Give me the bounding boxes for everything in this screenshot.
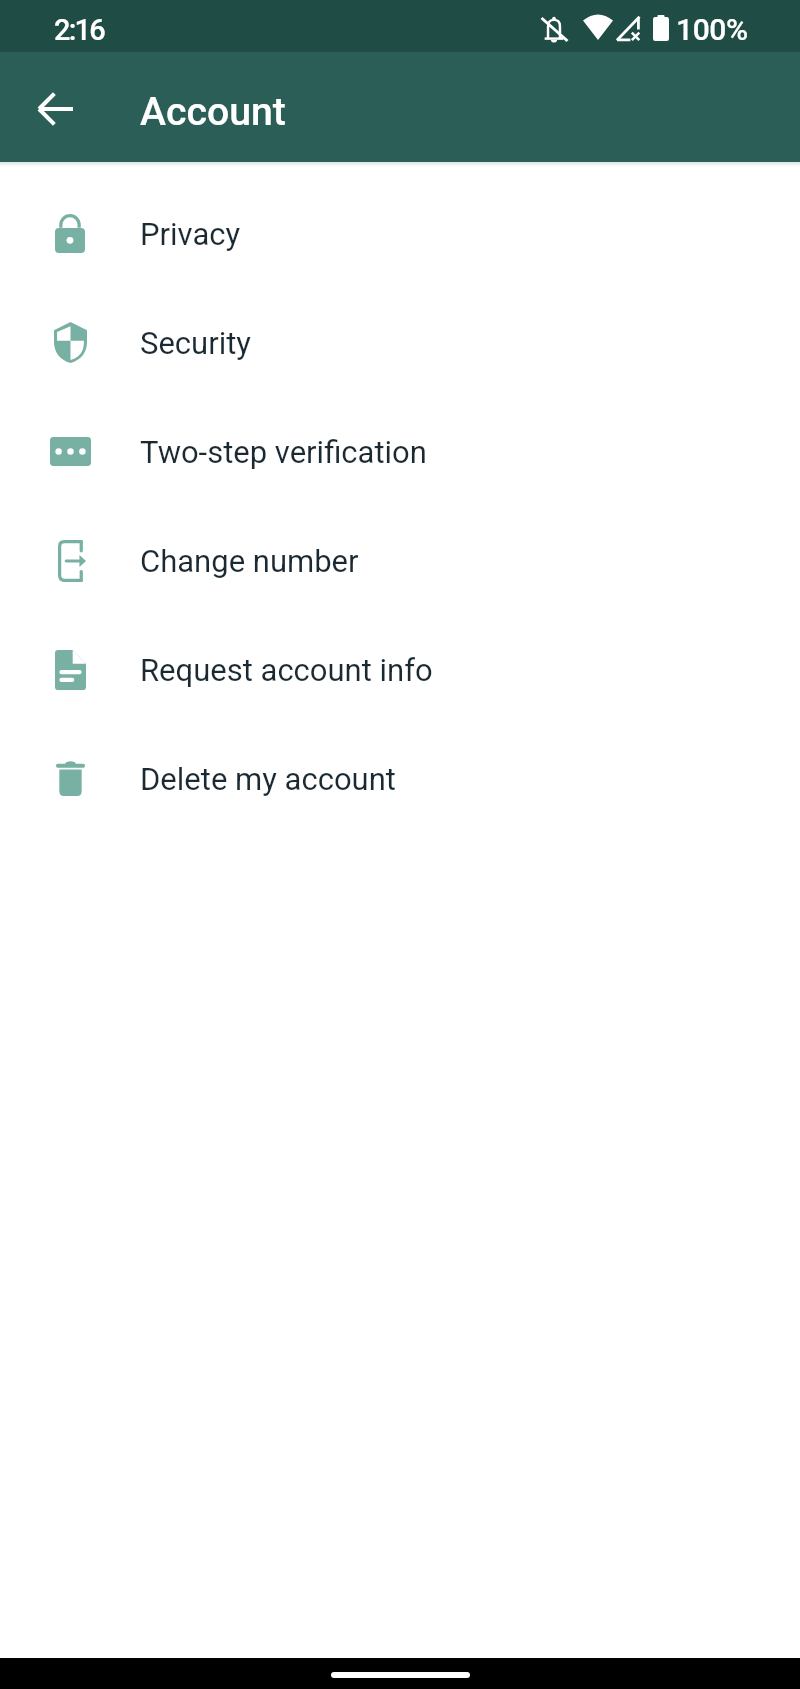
button[interactable]: Back xyxy=(12,67,96,151)
staticText: Privacy xyxy=(140,216,241,252)
staticText: Security xyxy=(140,325,252,361)
staticText: Change number xyxy=(140,543,359,579)
staticText: Two-step verification xyxy=(140,434,427,470)
staticText: 100% xyxy=(676,12,748,47)
button[interactable]: Delete my account xyxy=(0,724,800,833)
button[interactable]: Security xyxy=(0,288,800,397)
staticText: Delete my account xyxy=(140,761,396,797)
button[interactable]: Change number xyxy=(0,506,800,615)
button[interactable]: Two-step verification xyxy=(0,397,800,506)
button[interactable]: Privacy xyxy=(0,179,800,288)
staticText: 2:16 xyxy=(54,13,104,47)
staticText: Request account info xyxy=(140,652,433,688)
staticText: Account xyxy=(140,89,286,135)
button[interactable]: Request account info xyxy=(0,615,800,724)
